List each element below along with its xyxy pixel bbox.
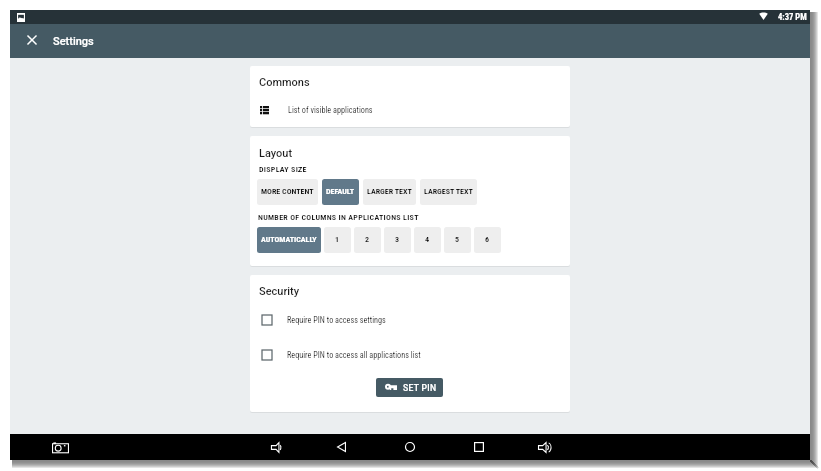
- button[interactable]: 1: [324, 227, 351, 253]
- button[interactable]: Home: [397, 434, 423, 460]
- staticText: List of visible applications: [288, 105, 373, 115]
- staticText: MORE CONTENT: [261, 187, 314, 196]
- button[interactable]: LARGEST TEXT: [420, 179, 477, 205]
- staticText: 1: [335, 235, 340, 244]
- button[interactable]: MORE CONTENT: [257, 179, 318, 205]
- staticText: DISPLAY SIZE: [259, 165, 307, 174]
- staticText: 4: [425, 235, 430, 244]
- button[interactable]: 2: [354, 227, 381, 253]
- staticText: Layout: [259, 147, 293, 160]
- staticText: LARGEST TEXT: [424, 187, 473, 196]
- staticText: Require PIN to access settings: [287, 315, 386, 325]
- staticText: LARGER TEXT: [367, 187, 412, 196]
- button[interactable]: Back: [328, 434, 354, 460]
- button[interactable]: Volume up: [531, 434, 557, 460]
- button[interactable]: Require PIN to access all applications l…: [250, 344, 570, 365]
- staticText: NUMBER OF COLUMNS IN APPLICATIONS LIST: [258, 213, 419, 222]
- staticText: 3: [395, 235, 400, 244]
- button[interactable]: LARGER TEXT: [363, 179, 416, 205]
- staticText: Commons: [259, 76, 310, 89]
- button[interactable]: Close: [20, 28, 44, 52]
- button[interactable]: 4: [414, 227, 441, 253]
- button[interactable]: 5: [444, 227, 471, 253]
- staticText: AUTOMATICALLY: [261, 235, 317, 244]
- button[interactable]: Screenshot: [47, 434, 73, 460]
- button[interactable]: SET PIN: [376, 378, 443, 397]
- staticText: 5: [455, 235, 460, 244]
- button[interactable]: Recents: [466, 434, 492, 460]
- button[interactable]: Require PIN to access settings: [250, 309, 570, 330]
- staticText: Require PIN to access all applications l…: [287, 350, 421, 360]
- button[interactable]: 3: [384, 227, 411, 253]
- button[interactable]: List of visible applications: [250, 98, 570, 122]
- staticText: SET PIN: [403, 383, 437, 393]
- button[interactable]: 6: [474, 227, 501, 253]
- button[interactable]: DEFAULT: [322, 179, 359, 205]
- staticText: 2: [365, 235, 370, 244]
- button[interactable]: Volume down: [263, 434, 289, 460]
- staticText: Security: [259, 285, 300, 298]
- staticText: DEFAULT: [326, 187, 355, 196]
- button[interactable]: AUTOMATICALLY: [257, 227, 321, 253]
- staticText: 6: [485, 235, 490, 244]
- staticText: 4:37 PM: [778, 12, 807, 22]
- staticText: Settings: [53, 35, 94, 48]
